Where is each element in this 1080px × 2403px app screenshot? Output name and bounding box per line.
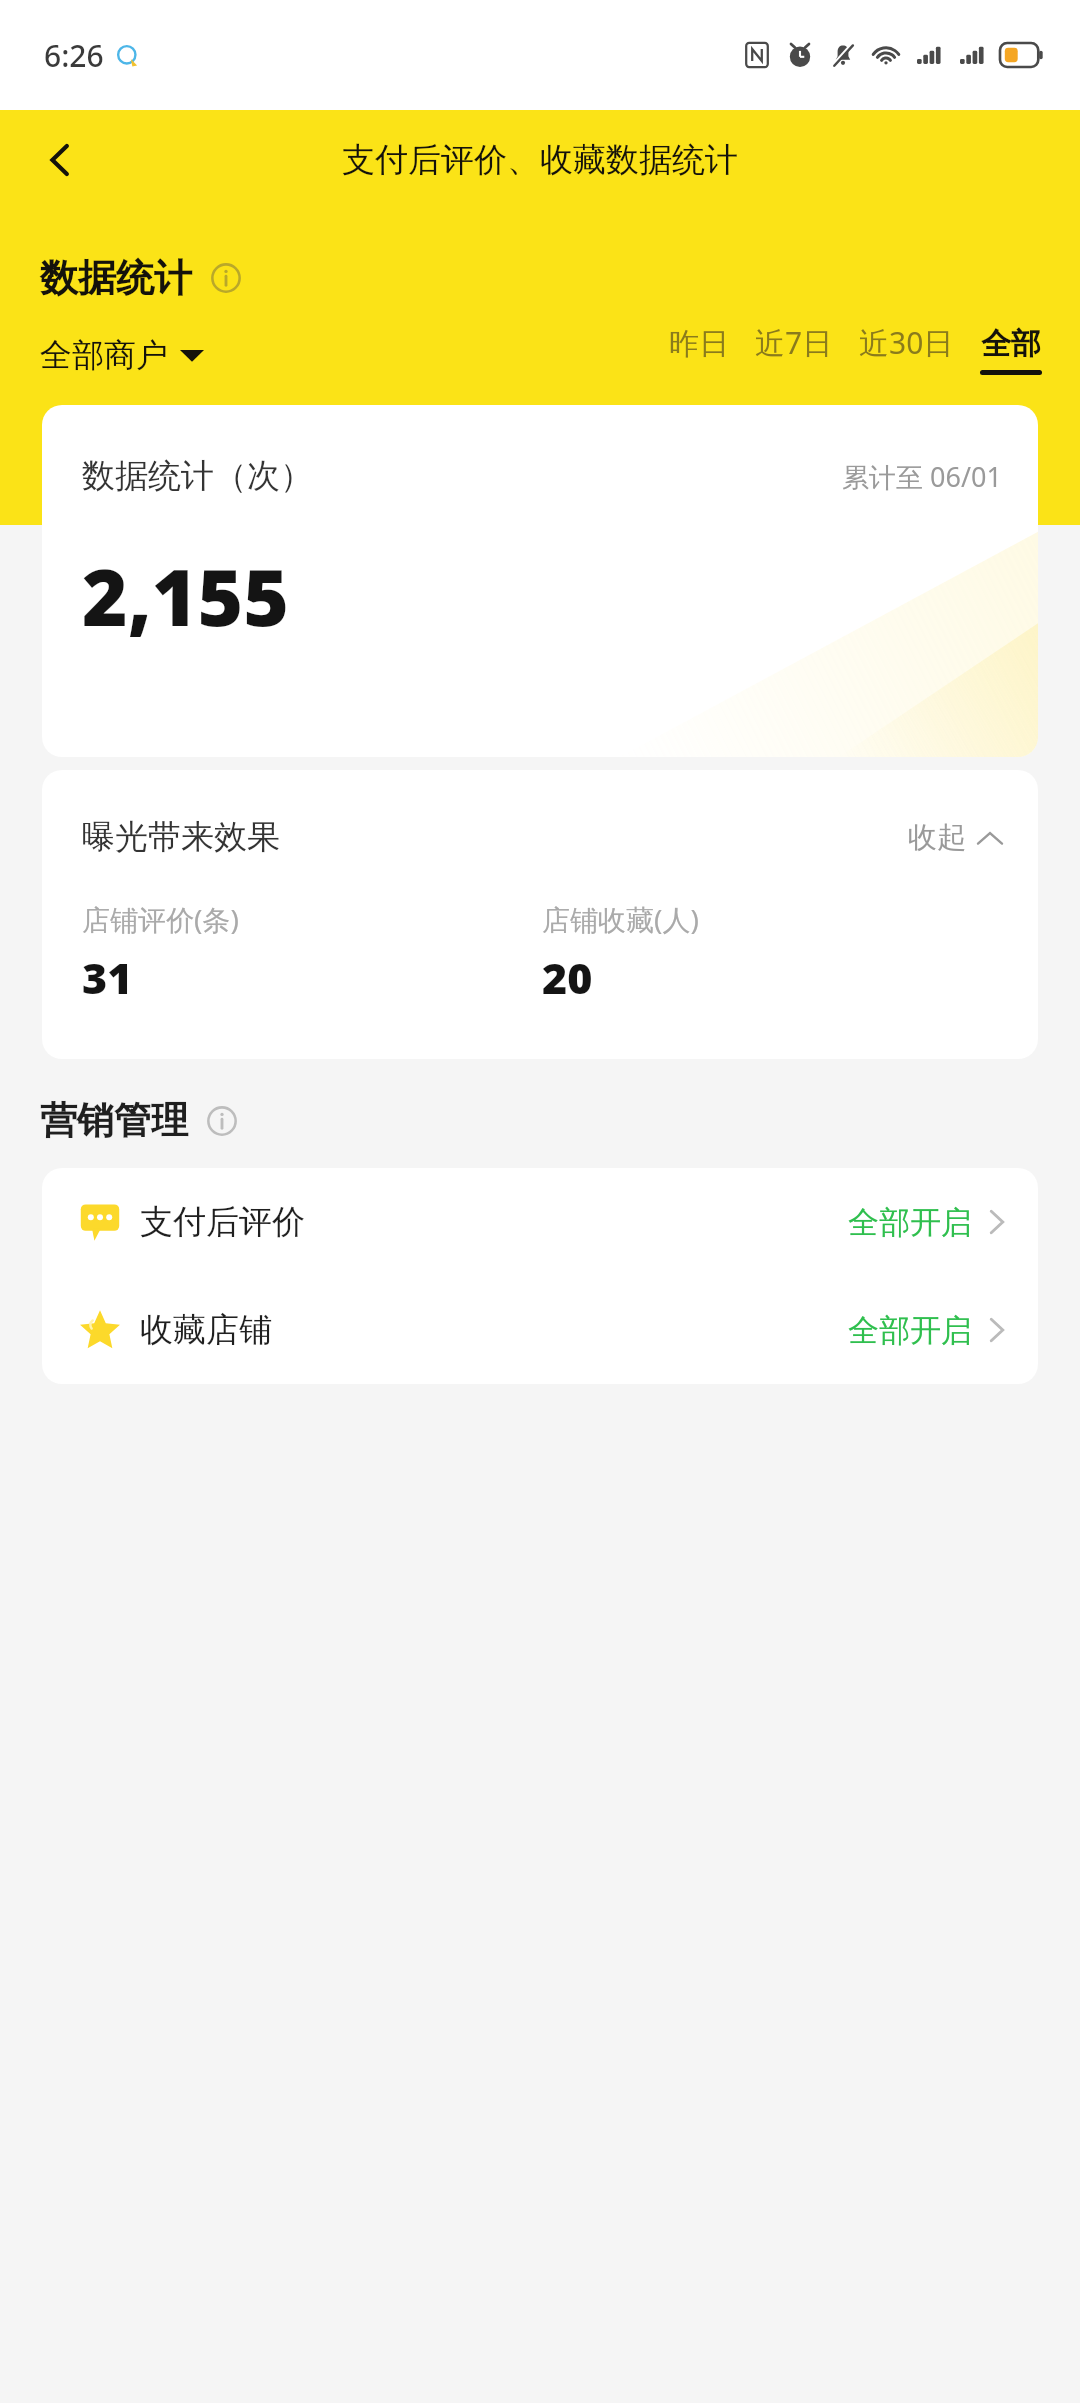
button[interactable]: 收起: [908, 819, 1002, 856]
staticText: 支付后评价: [140, 1201, 305, 1243]
staticText: 全部开启: [848, 1203, 972, 1242]
staticText: 曝光带来效果: [82, 816, 280, 858]
staticText: 20: [542, 948, 593, 1007]
button[interactable]: 全部商户: [40, 335, 204, 375]
button[interactable]: 数据统计说明: [206, 258, 246, 298]
staticText: 近7日: [755, 322, 833, 363]
staticText: 营销管理: [40, 1097, 188, 1144]
button[interactable]: 全部: [980, 325, 1042, 375]
button[interactable]: 收藏店铺: [42, 1276, 1038, 1384]
staticText: 店铺评价(条): [82, 900, 239, 938]
staticText: 31: [82, 948, 133, 1007]
staticText: 数据统计（次）: [82, 455, 313, 497]
button[interactable]: 数据统计（次）: [42, 405, 1038, 757]
staticText: 昨日: [669, 325, 729, 363]
staticText: 店铺收藏(人): [542, 900, 699, 938]
button[interactable]: 近7日: [755, 322, 833, 375]
staticText: 收起: [908, 819, 966, 856]
staticText: 数据统计: [40, 254, 192, 302]
button[interactable]: 营销管理说明: [202, 1101, 242, 1141]
staticText: 收藏店铺: [140, 1309, 272, 1351]
staticText: 全部: [981, 325, 1041, 363]
staticText: 6:26: [44, 35, 104, 76]
staticText: 支付后评价、收藏数据统计: [342, 139, 738, 181]
button[interactable]: 近30日: [859, 322, 954, 375]
staticText: 近30日: [859, 322, 954, 363]
button[interactable]: 昨日: [669, 325, 729, 375]
staticText: 全部开启: [848, 1311, 972, 1350]
staticText: 累计至 06/01: [842, 458, 1002, 495]
staticText: 2,155: [82, 543, 289, 649]
button[interactable]: 支付后评价: [42, 1168, 1038, 1276]
button[interactable]: Back: [24, 124, 96, 196]
staticText: 全部商户: [40, 335, 168, 375]
